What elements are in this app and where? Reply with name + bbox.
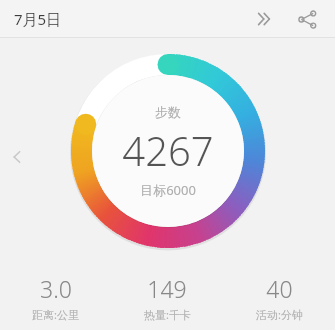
staticText: 活动:分钟 [256,307,303,322]
staticText: 步数 [155,104,181,120]
staticText: 40 [266,273,293,304]
staticText: 7月5日 [14,9,62,29]
staticText: 距离:公里 [32,307,79,322]
button[interactable]: 40 [223,269,335,326]
staticText: 3.0 [40,273,72,304]
button[interactable]: Share [291,3,323,35]
staticText: 目标6000 [140,181,196,199]
button[interactable]: Expand [249,3,281,35]
staticText: 热量:千卡 [144,307,191,322]
button[interactable]: Previous day [0,140,34,174]
staticText: 4267 [122,123,214,177]
button[interactable]: 149 [111,269,223,326]
button[interactable]: 3.0 [0,269,111,326]
staticText: 149 [147,273,187,304]
button[interactable]: 7月5日 [14,9,62,29]
